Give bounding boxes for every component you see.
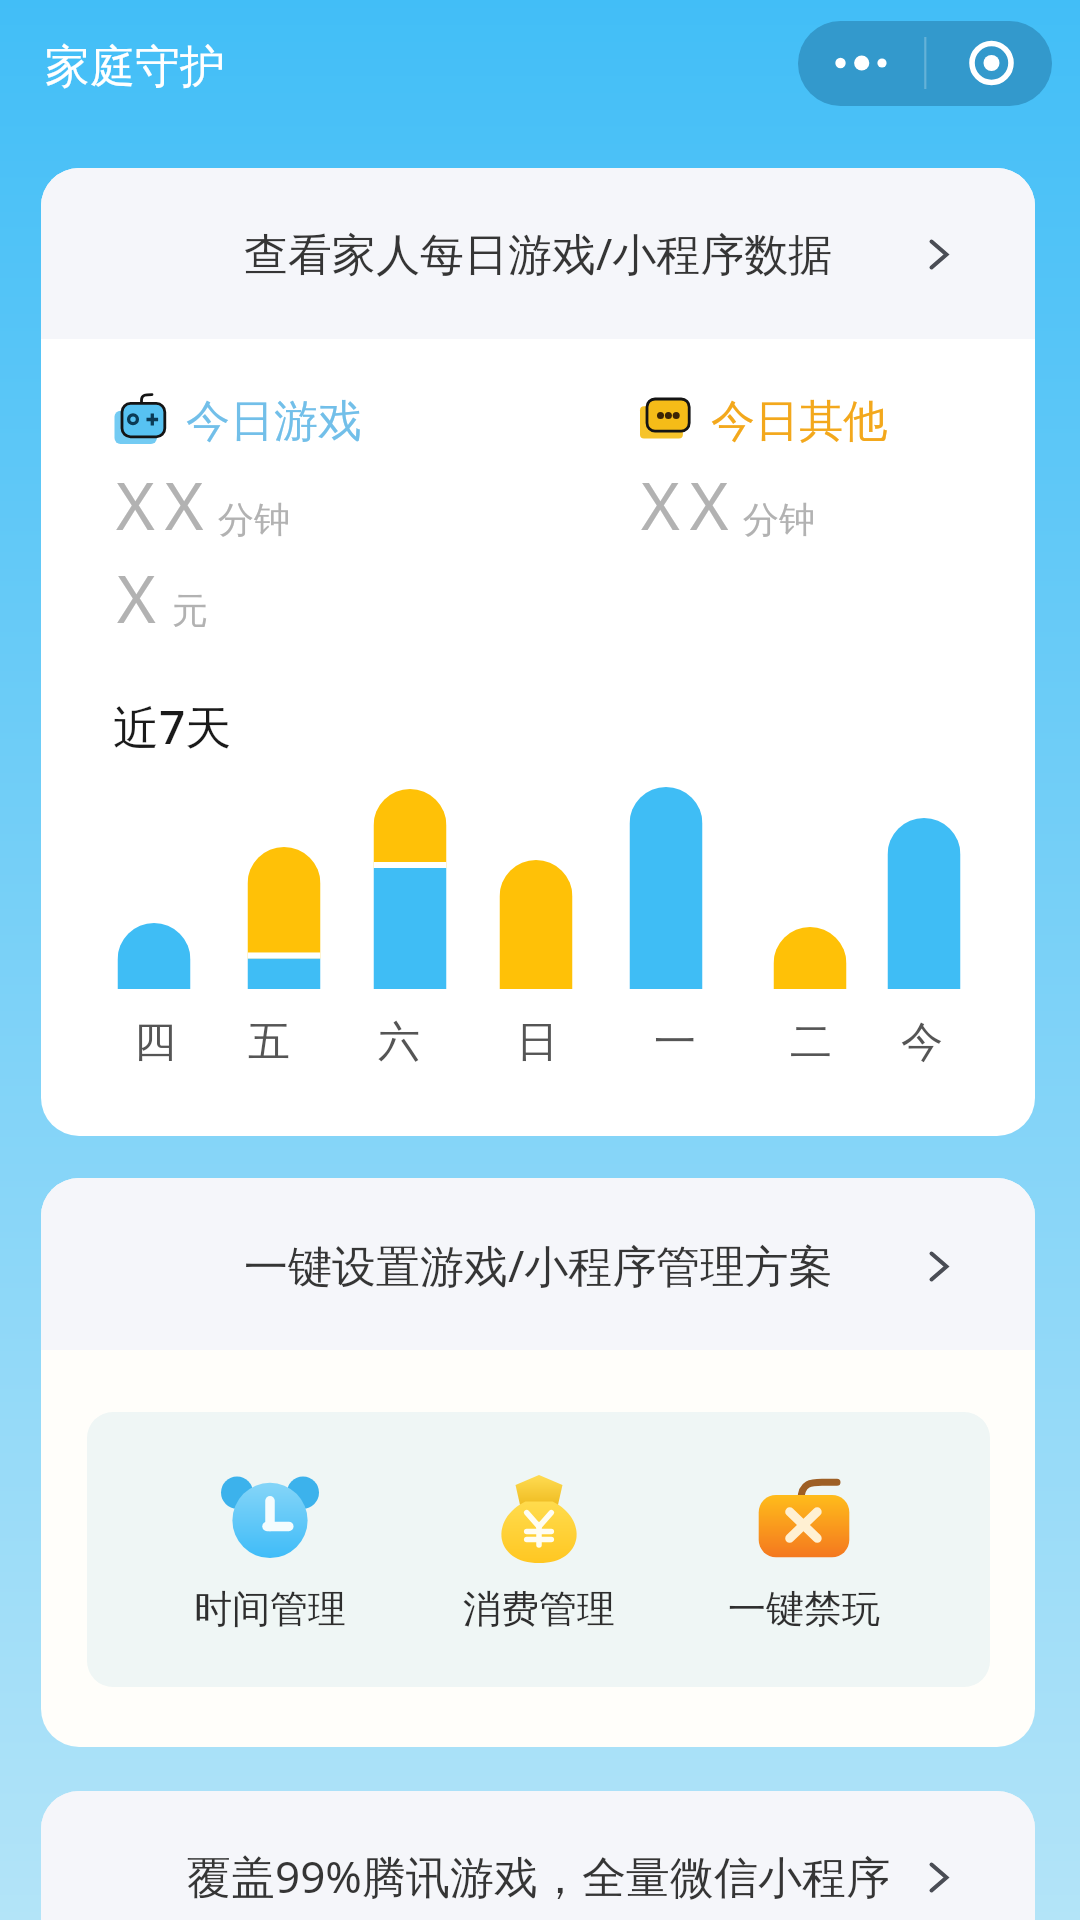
staticText: 一键禁玩 — [728, 1585, 880, 1633]
staticText: 一 — [630, 1016, 720, 1069]
staticText: XX — [116, 459, 214, 549]
button[interactable]: 覆盖99%腾讯游戏，全量微信小程序 — [41, 1791, 1035, 1920]
staticText: 五 — [224, 1016, 314, 1069]
staticText: 消费管理 — [463, 1585, 615, 1633]
button[interactable]: 一键设置游戏/小程序管理方案 — [41, 1178, 1035, 1350]
staticText: 二 — [766, 1016, 856, 1069]
staticText: 日 — [492, 1016, 582, 1069]
staticText: 今 — [877, 1016, 967, 1069]
button[interactable]: 时间管理 — [160, 1412, 380, 1687]
button[interactable]: 查看家人每日游戏/小程序数据 — [41, 168, 1035, 339]
staticText: 一键设置游戏/小程序管理方案 — [244, 1235, 833, 1295]
staticText: 时间管理 — [194, 1585, 346, 1633]
button[interactable]: Menu and close — [798, 21, 1052, 106]
staticText: 六 — [354, 1016, 444, 1069]
staticText: 四 — [110, 1016, 200, 1069]
staticText: 近7天 — [113, 695, 232, 758]
staticText: 家庭守护 — [45, 39, 225, 96]
staticText: 元 — [172, 588, 208, 633]
staticText: X — [117, 552, 156, 642]
staticText: XX — [641, 459, 739, 549]
staticText: 覆盖99%腾讯游戏，全量微信小程序 — [187, 1846, 890, 1906]
staticText: 分钟 — [218, 497, 290, 542]
staticText: 今日其他 — [711, 394, 887, 449]
staticText: 分钟 — [743, 497, 815, 542]
button[interactable]: 一键禁玩 — [694, 1412, 914, 1687]
staticText: 今日游戏 — [186, 394, 362, 449]
button[interactable]: 消费管理 — [429, 1412, 649, 1687]
staticText: 查看家人每日游戏/小程序数据 — [244, 223, 833, 283]
